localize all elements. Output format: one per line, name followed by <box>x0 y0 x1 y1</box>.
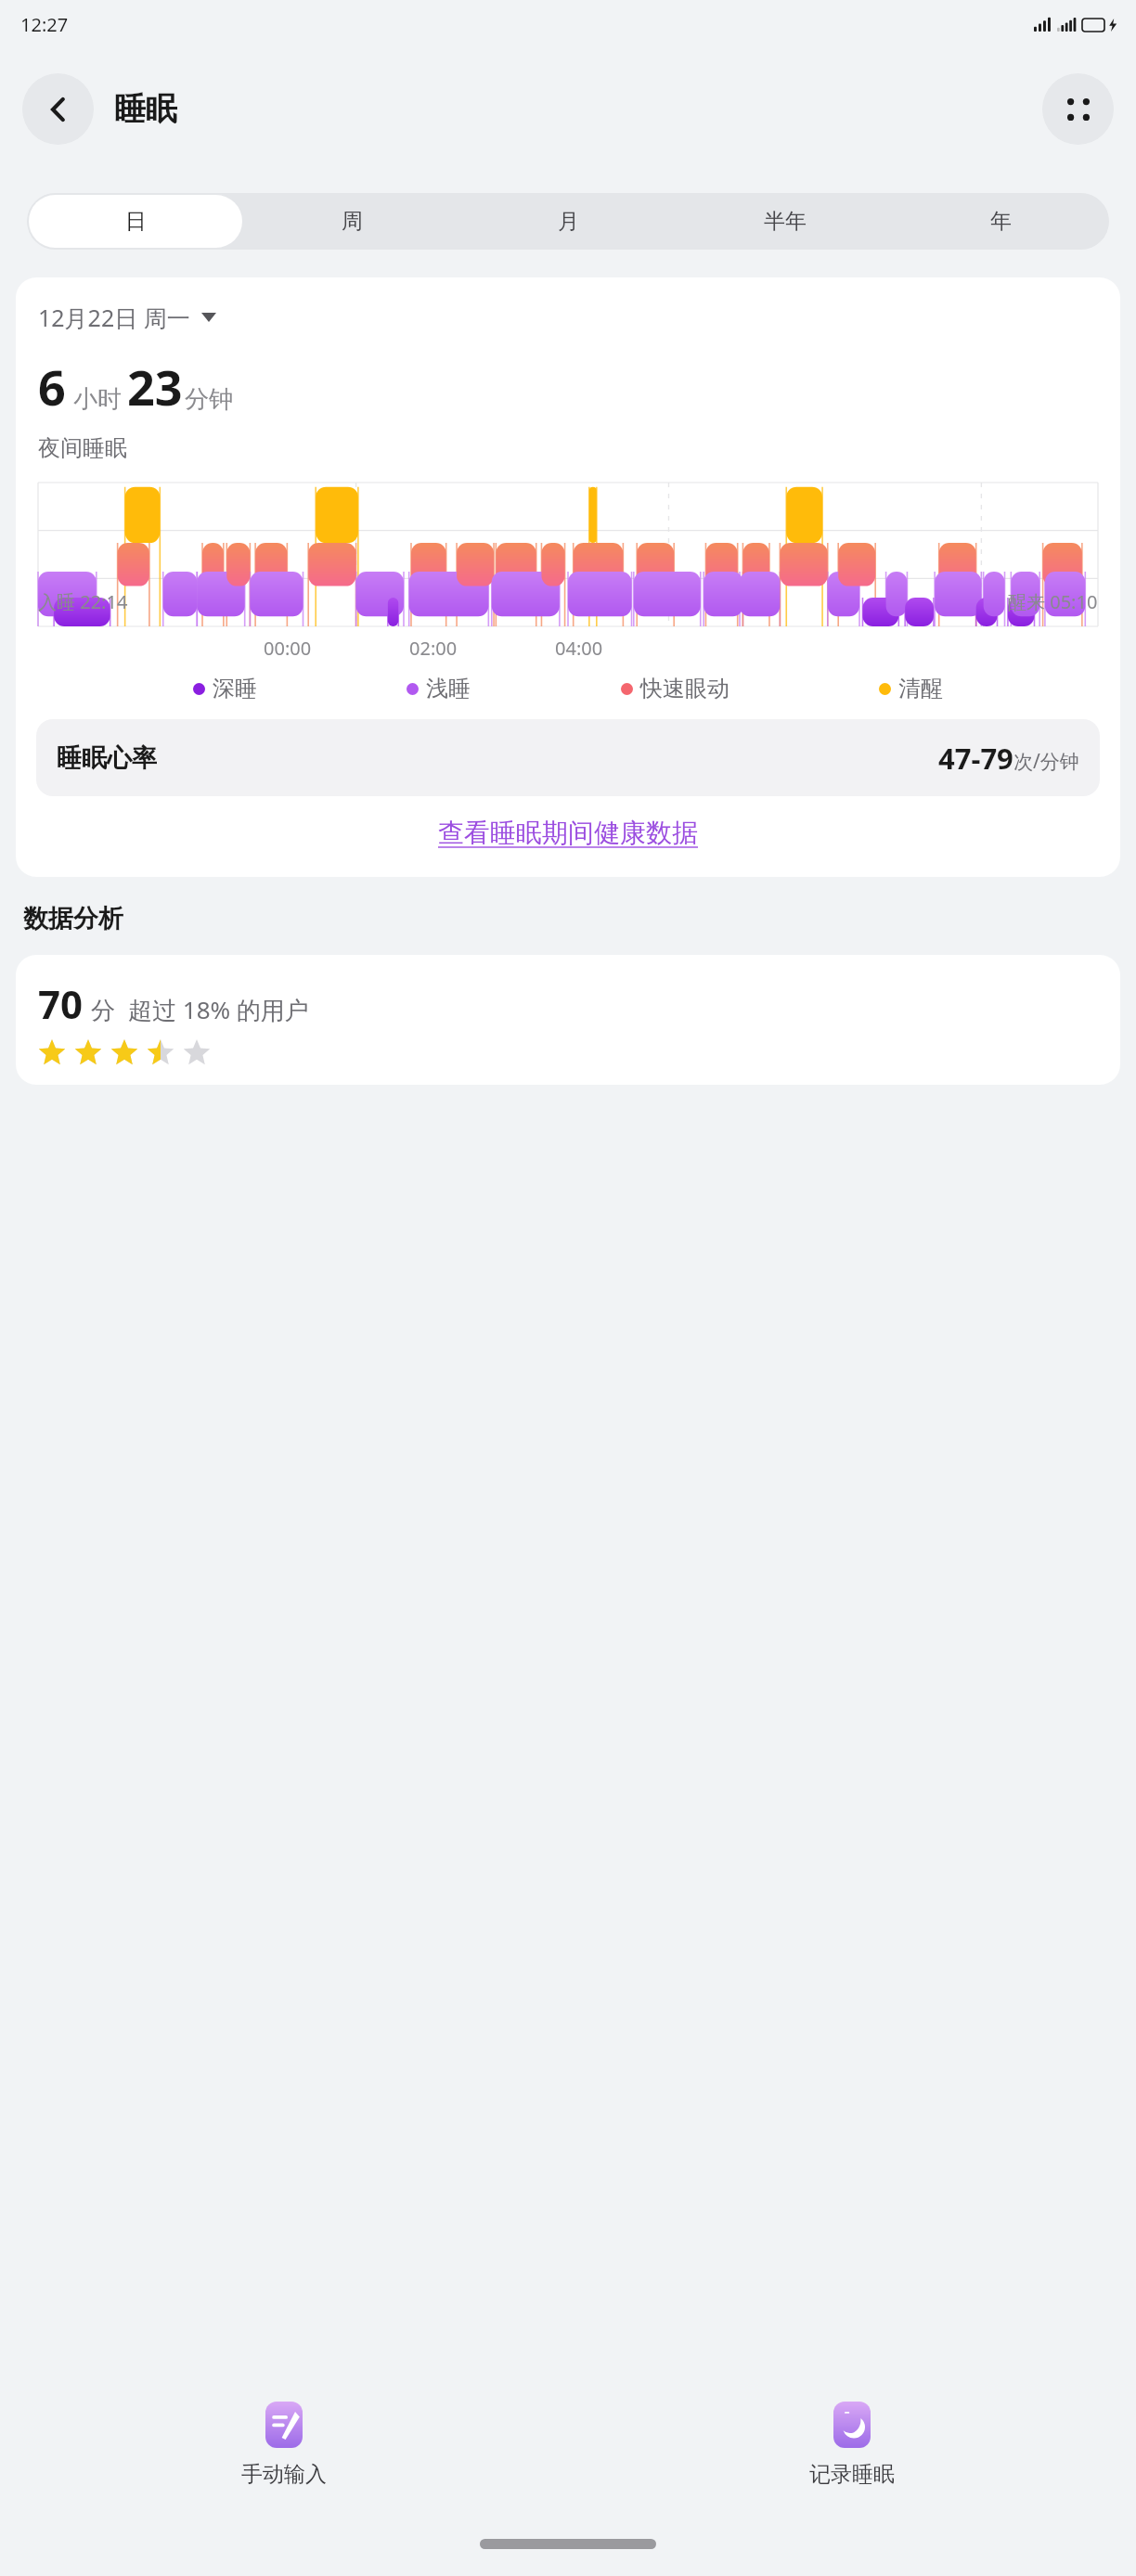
staticText: 分钟 <box>185 384 233 415</box>
staticText: 睡眠心率 <box>57 742 157 774</box>
staticText: 70 <box>38 977 84 1030</box>
button[interactable]: 半年 <box>677 193 893 250</box>
staticText: 醒来 05:10 <box>1008 589 1098 614</box>
staticText: 周 <box>342 208 363 235</box>
button[interactable]: 月 <box>460 193 677 250</box>
button[interactable]: 记录睡眠 <box>568 2402 1136 2488</box>
staticText: 清醒 <box>898 675 943 702</box>
staticText: 12:27 <box>20 12 69 37</box>
button[interactable]: Back <box>22 73 94 145</box>
staticText: 00:00 <box>264 636 312 661</box>
staticText: 快速眼动 <box>640 675 729 702</box>
staticText: 月 <box>558 208 579 235</box>
button[interactable]: More options <box>1042 73 1114 145</box>
staticText: 夜间睡眠 <box>38 434 127 462</box>
staticText: 02:00 <box>409 636 458 661</box>
staticText: 半年 <box>764 208 807 235</box>
staticText: 入睡 22:14 <box>38 589 128 614</box>
staticText: 超过 18% 的用户 <box>128 993 309 1026</box>
button[interactable]: 查看睡眠期间健康数据 <box>438 817 698 849</box>
button[interactable]: 12月22日 周一 <box>38 302 216 333</box>
staticText: 分 <box>91 996 115 1026</box>
staticText: 睡眠 <box>114 89 177 129</box>
staticText: 手动输入 <box>241 2461 327 2488</box>
staticText: 深睡 <box>213 675 257 702</box>
button[interactable]: 手动输入 <box>0 2402 568 2488</box>
staticText: 6 <box>38 354 66 419</box>
staticText: 23 <box>127 354 183 419</box>
staticText: 04:00 <box>555 636 603 661</box>
staticText: 浅睡 <box>426 675 471 702</box>
staticText: 次/分钟 <box>1013 748 1079 775</box>
staticText: 小时 <box>73 384 122 415</box>
button[interactable]: 年 <box>893 193 1109 250</box>
staticText: 日 <box>125 208 147 235</box>
staticText: 47-79 <box>938 739 1013 778</box>
button[interactable]: 周 <box>244 193 460 250</box>
button[interactable]: 睡眠心率 <box>36 719 1100 796</box>
staticText: 数据分析 <box>23 903 123 934</box>
button[interactable]: 日 <box>29 195 242 248</box>
staticText: 12月22日 周一 <box>38 302 190 333</box>
staticText: 年 <box>990 208 1012 235</box>
staticText: 记录睡眠 <box>809 2461 895 2488</box>
